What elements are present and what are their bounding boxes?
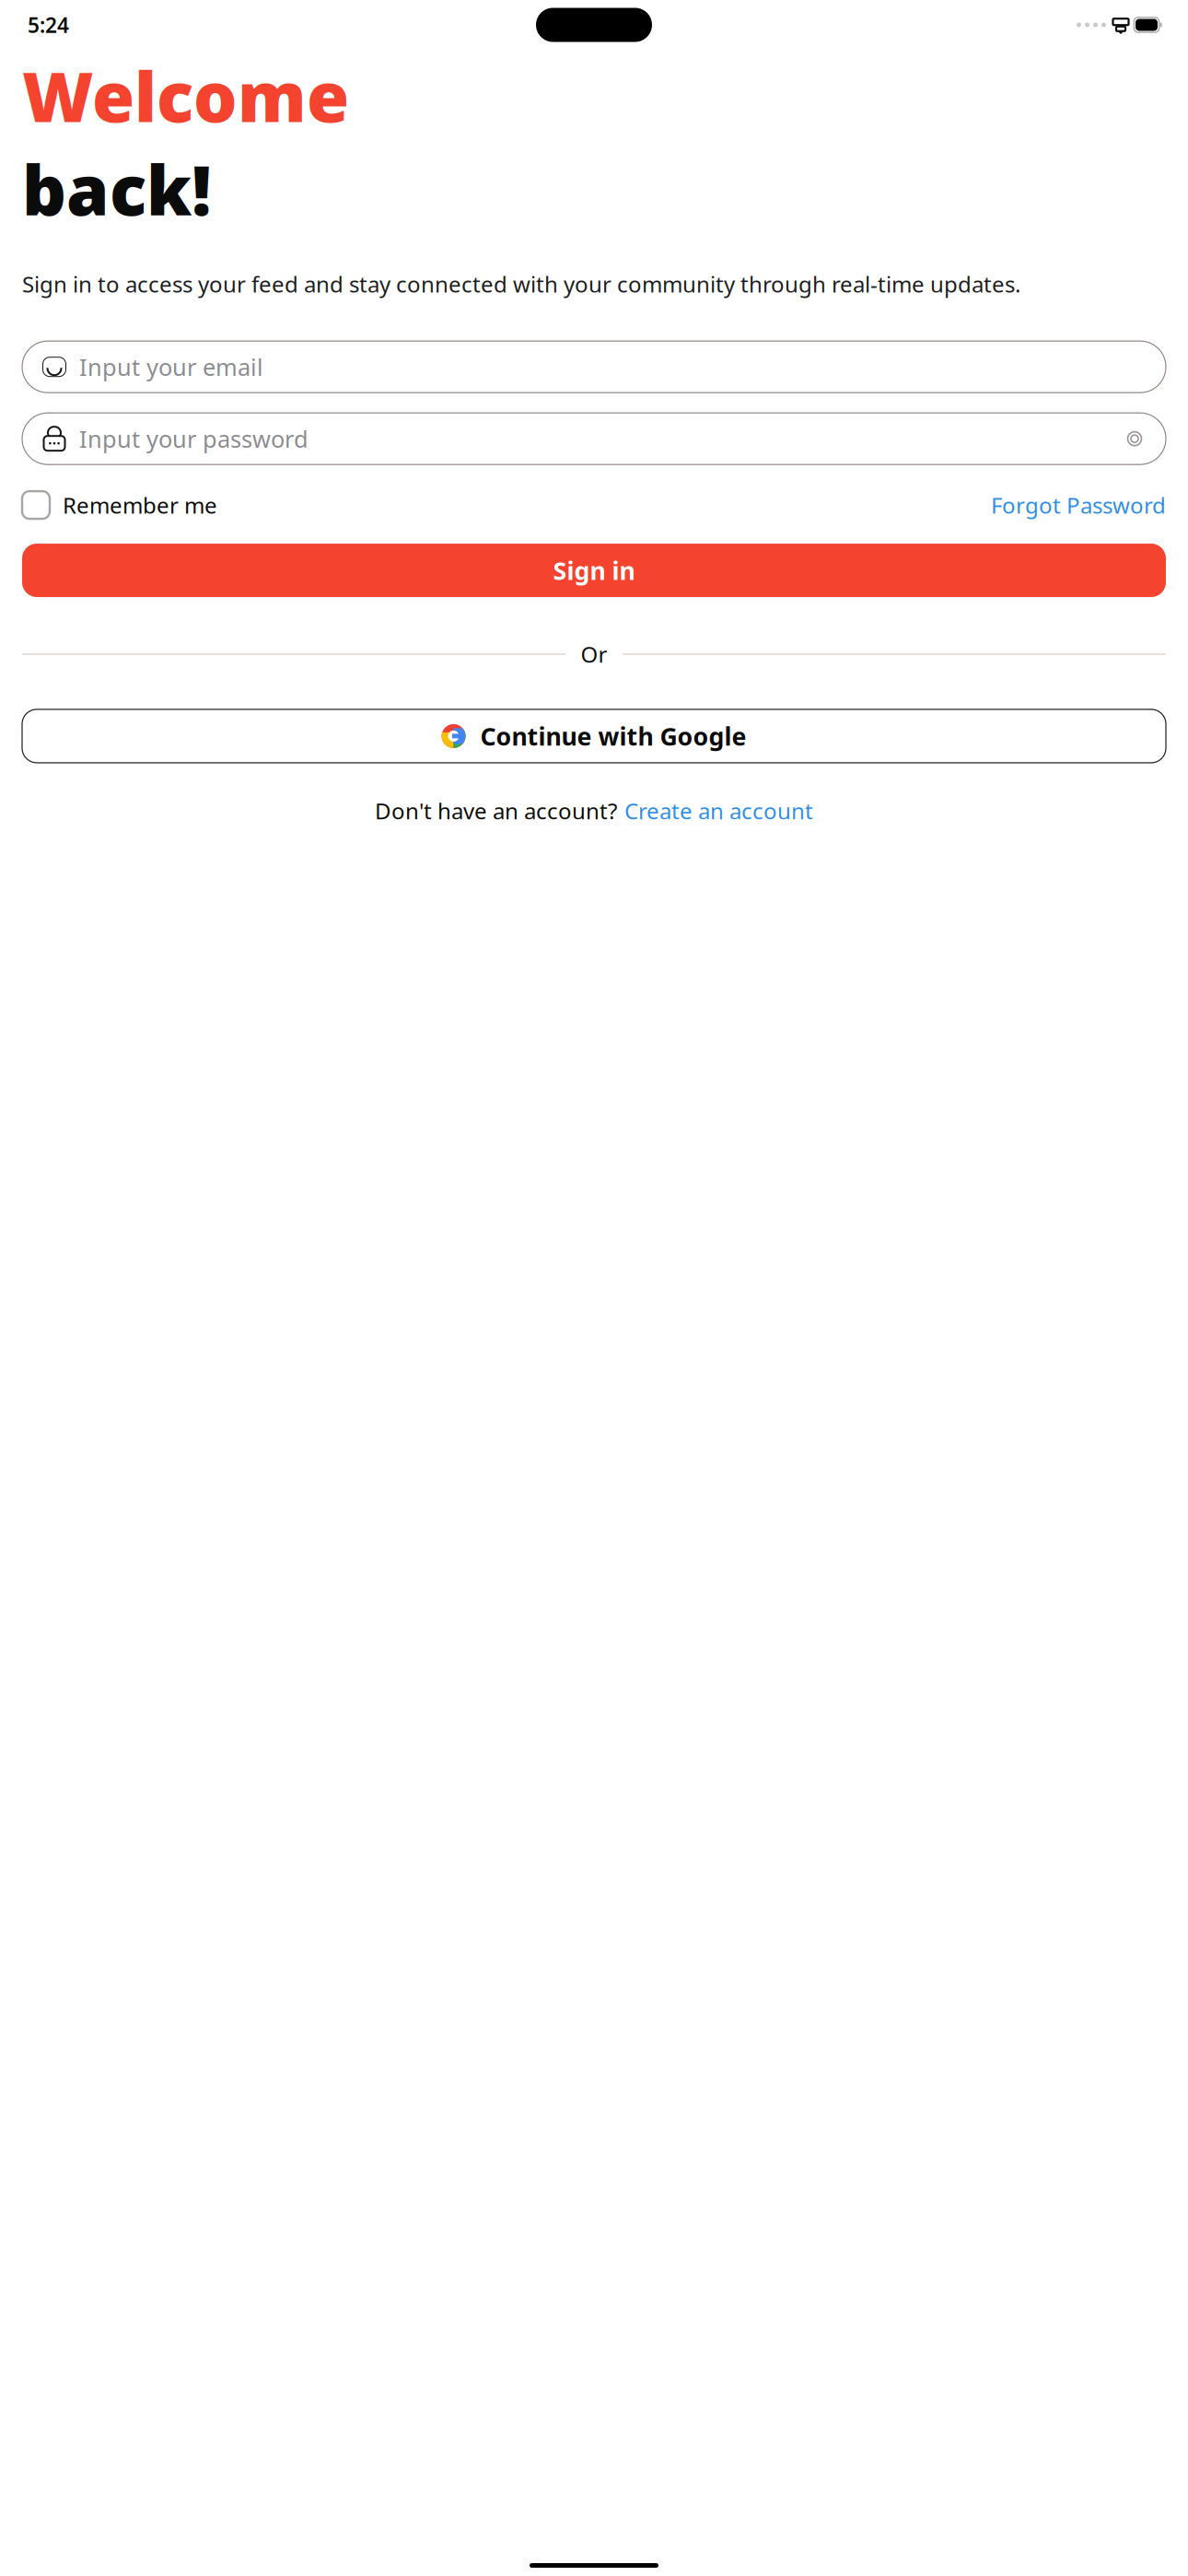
staticText: Create an account bbox=[624, 796, 813, 825]
button[interactable]: Remember me bbox=[22, 490, 217, 520]
button[interactable]: Show password bbox=[1124, 428, 1146, 450]
staticText: Welcome bbox=[22, 50, 349, 141]
staticText: Continue with Google bbox=[480, 720, 746, 752]
staticText: Don't have an account? bbox=[375, 796, 617, 825]
staticText: Input your password bbox=[79, 423, 309, 454]
staticText: Remember me bbox=[63, 490, 217, 520]
button[interactable]: Sign in bbox=[22, 544, 1166, 597]
button[interactable]: Continue with Google bbox=[22, 709, 1166, 763]
staticText: Sign in bbox=[553, 554, 635, 587]
staticText: 5:24 bbox=[28, 11, 69, 39]
staticText: Forgot Password bbox=[991, 490, 1166, 520]
staticText: Or bbox=[581, 639, 607, 669]
staticText: Input your email bbox=[79, 351, 263, 382]
staticText: Sign in to access your feed and stay con… bbox=[22, 269, 1020, 299]
button[interactable]: Forgot Password bbox=[991, 490, 1166, 520]
staticText: back! bbox=[22, 143, 212, 234]
button[interactable]: Create an account bbox=[624, 796, 813, 825]
